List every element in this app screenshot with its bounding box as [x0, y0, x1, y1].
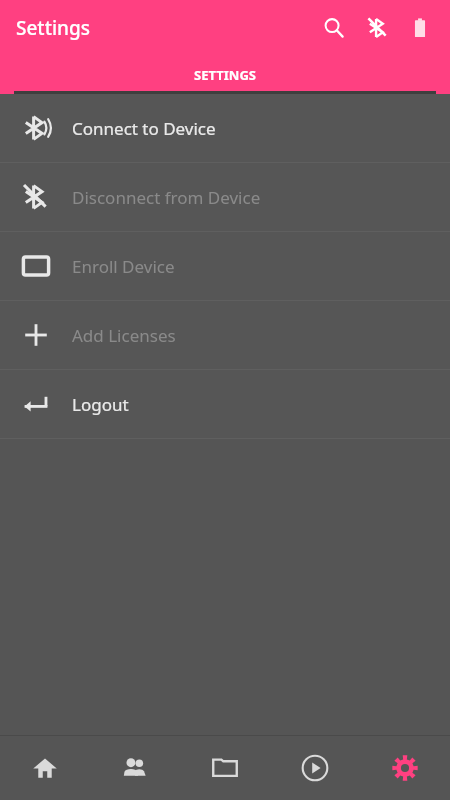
- button[interactable]: Home: [0, 736, 90, 800]
- button[interactable]: Disconnect from Device: [0, 163, 450, 231]
- button[interactable]: Enroll Device: [0, 232, 450, 300]
- button[interactable]: People: [90, 736, 180, 800]
- button[interactable]: Connect to Device: [0, 94, 450, 162]
- button[interactable]: Logout: [0, 370, 450, 438]
- staticText: Disconnect from Device: [72, 186, 261, 209]
- staticText: Logout: [72, 393, 129, 416]
- staticText: Enroll Device: [72, 255, 175, 278]
- button[interactable]: Folder: [180, 736, 270, 800]
- button[interactable]: SETTINGS: [0, 56, 450, 94]
- button[interactable]: Search: [312, 6, 356, 50]
- staticText: SETTINGS: [194, 66, 256, 84]
- button[interactable]: Add Licenses: [0, 301, 450, 369]
- button[interactable]: Settings: [360, 736, 450, 800]
- staticText: Settings: [16, 15, 90, 41]
- button[interactable]: Bluetooth disabled: [356, 6, 400, 50]
- button[interactable]: Play: [270, 736, 360, 800]
- staticText: Connect to Device: [72, 117, 216, 140]
- button[interactable]: Battery: [400, 8, 440, 48]
- staticText: Add Licenses: [72, 324, 176, 347]
